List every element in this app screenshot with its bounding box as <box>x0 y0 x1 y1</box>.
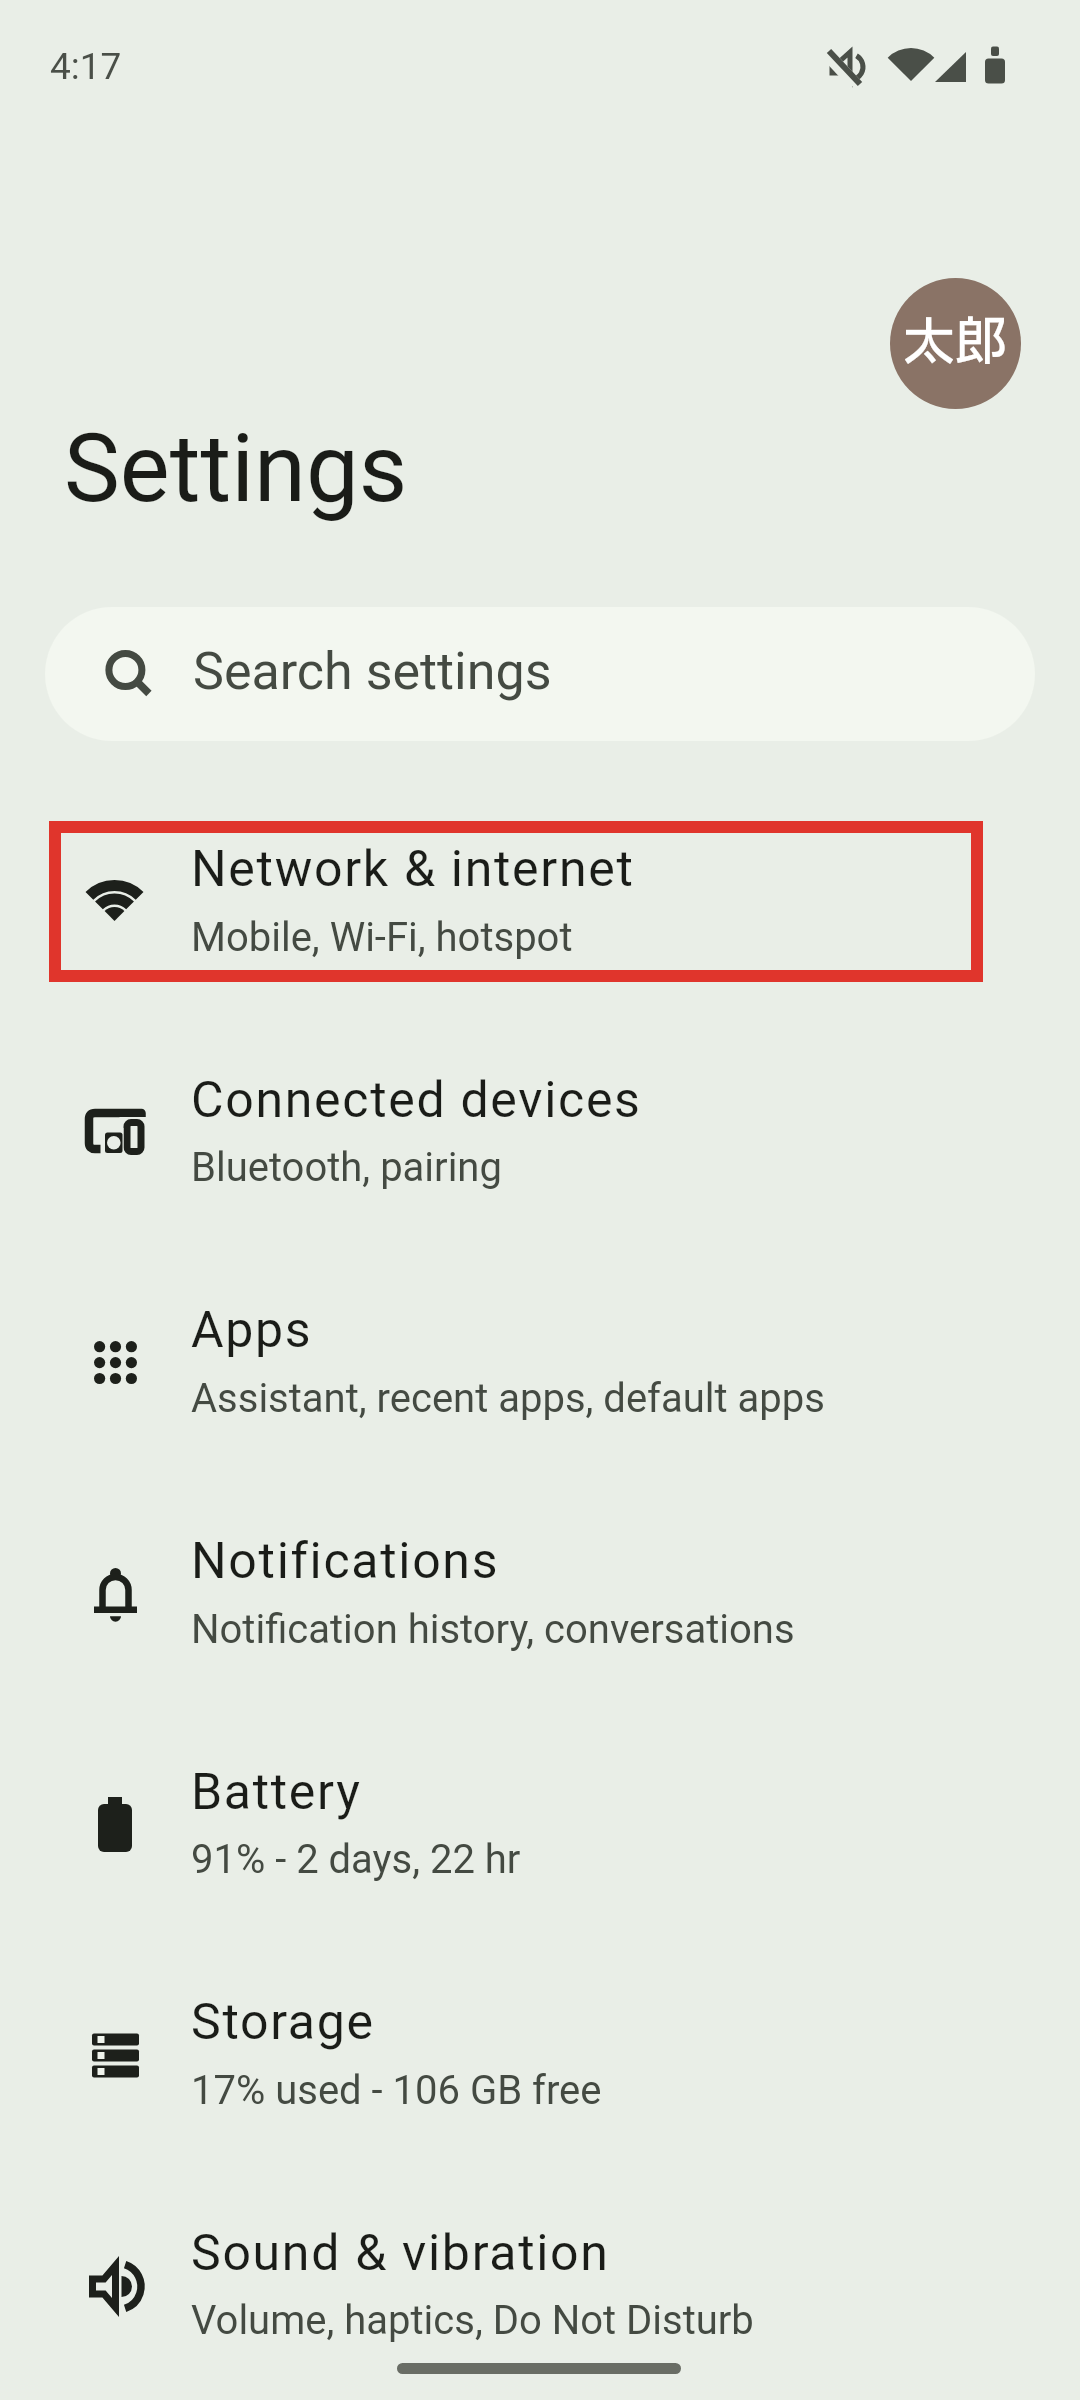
staticText: Apps <box>191 1301 313 1360</box>
button[interactable] <box>0 1974 1080 2205</box>
staticText: 太郎 <box>903 305 1008 383</box>
button[interactable]: 太郎 <box>890 278 1021 409</box>
button[interactable] <box>0 1743 1080 1974</box>
staticText: Search settings <box>193 641 552 702</box>
button[interactable] <box>45 607 1035 741</box>
staticText: Assistant, recent apps, default apps <box>191 1375 825 1422</box>
staticText: Battery <box>191 1763 362 1822</box>
button[interactable] <box>0 1052 1080 1283</box>
staticText: 4:17 <box>50 45 122 88</box>
button[interactable] <box>0 821 1080 1052</box>
button[interactable] <box>397 2363 681 2374</box>
staticText: Mobile, Wi-Fi, hotspot <box>191 914 573 961</box>
button[interactable] <box>0 1282 1080 1513</box>
staticText: Sound & vibration <box>191 2224 610 2283</box>
staticText: Bluetooth, pairing <box>191 1144 502 1191</box>
staticText: Volume, haptics, Do Not Disturb <box>191 2297 754 2344</box>
button[interactable] <box>0 1513 1080 1744</box>
staticText: Settings <box>64 414 408 524</box>
staticText: 17% used - 106 GB free <box>191 2067 602 2114</box>
staticText: Storage <box>191 1993 375 2052</box>
staticText: Network & internet <box>191 840 635 899</box>
staticText: Connected devices <box>191 1071 642 1130</box>
staticText: Notifications <box>191 1532 500 1591</box>
staticText: 91% - 2 days, 22 hr <box>191 1836 521 1883</box>
staticText: Notification history, conversations <box>191 1606 795 1653</box>
button[interactable] <box>0 2205 1080 2400</box>
